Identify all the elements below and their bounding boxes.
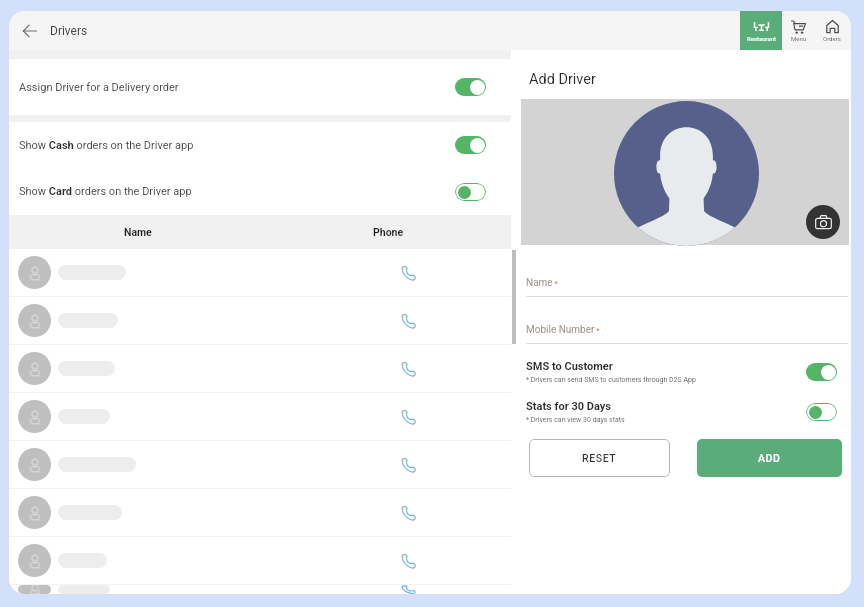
button[interactable]: Call driver (9, 393, 511, 440)
button[interactable]: Call driver (9, 537, 511, 584)
staticText: Show Cash orders on the Driver app (19, 139, 194, 152)
staticText: Mobile Number * (526, 324, 600, 336)
button[interactable]: Name * (526, 277, 848, 297)
button[interactable]: Mobile Number * (526, 324, 848, 344)
button[interactable]: Show Cash orders on the Driver app (9, 122, 511, 168)
staticText: RESET (582, 452, 617, 464)
button[interactable]: Menu (782, 11, 815, 50)
button[interactable]: Call driver (306, 249, 511, 296)
staticText: Menu (791, 35, 807, 42)
button[interactable]: Call driver (9, 249, 511, 296)
staticText: Name * (526, 277, 558, 289)
button[interactable]: Show Card orders on the Driver app (9, 168, 511, 215)
button[interactable]: Change photo (806, 205, 840, 239)
button[interactable]: Call driver (306, 393, 511, 440)
button[interactable]: Orders (815, 11, 848, 50)
button[interactable]: Call driver (9, 297, 511, 344)
button[interactable]: ADD (697, 439, 842, 477)
button[interactable]: Call driver (306, 489, 511, 536)
button[interactable]: RESET (529, 439, 670, 477)
staticText: ADD (758, 452, 781, 464)
button[interactable]: Assign Driver for a Delivery order (9, 59, 511, 115)
button[interactable]: Back (15, 16, 45, 46)
button[interactable]: Call driver (9, 489, 511, 536)
staticText: Restaurant (747, 35, 776, 42)
button[interactable]: Call driver (306, 345, 511, 392)
staticText: SMS to Customer (526, 360, 613, 373)
staticText: Add Driver (529, 71, 596, 88)
staticText: Name (124, 226, 152, 238)
staticText: Stats for 30 Days (526, 400, 611, 413)
button[interactable]: Call driver (9, 585, 511, 594)
staticText: Drivers (50, 24, 88, 38)
button[interactable]: Call driver (306, 537, 511, 584)
staticText: Orders (823, 35, 841, 42)
button[interactable]: Call driver (306, 585, 511, 594)
staticText: * Drivers can view 30 days stats (526, 416, 625, 424)
button[interactable]: Toggle on (455, 136, 486, 154)
button[interactable]: Call driver (9, 441, 511, 488)
button[interactable]: Toggle off (806, 403, 837, 421)
button[interactable]: Call driver (9, 345, 511, 392)
staticText: Phone (373, 226, 404, 238)
staticText: Assign Driver for a Delivery order (19, 81, 179, 94)
staticText: Show Card orders on the Driver app (19, 185, 192, 198)
button[interactable]: Restaurant (740, 11, 782, 50)
button[interactable]: Call driver (306, 297, 511, 344)
button[interactable]: Toggle on (806, 363, 837, 381)
button[interactable]: Toggle on (455, 78, 486, 96)
button[interactable]: Call driver (306, 441, 511, 488)
button[interactable]: Toggle off (455, 183, 486, 201)
staticText: * Drivers can send SMS to customers thro… (526, 376, 696, 384)
